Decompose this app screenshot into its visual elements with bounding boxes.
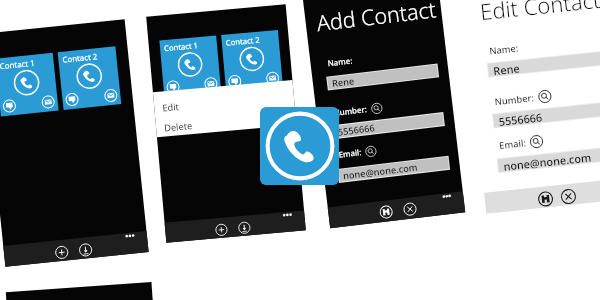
button[interactable]: More options [125,233,135,238]
button[interactable]: none@none.com [338,157,449,182]
staticText: Contact 1 [164,40,199,53]
button[interactable]: More options [282,212,292,217]
button[interactable]: 5556666 [333,113,444,138]
button[interactable]: Delete [164,119,194,134]
button[interactable]: Rene [488,50,600,77]
button[interactable]: Contact 2 [221,30,283,92]
button[interactable]: Search contacts [365,145,377,157]
button[interactable]: 5556666 [493,101,600,127]
button[interactable]: Search contacts [529,134,544,149]
button[interactable]: Rene [327,64,438,89]
button[interactable]: Search contacts [371,102,383,114]
button[interactable]: Save [379,205,393,219]
staticText: Rene [493,60,521,76]
button[interactable]: Contacts app icon [260,107,339,185]
button[interactable]: Save [537,191,554,207]
button[interactable]: More options [442,194,451,199]
button[interactable]: Contact 1 [0,53,59,116]
button[interactable]: none@none.com [498,146,600,172]
staticText: Email: [499,136,527,152]
button[interactable]: Contact 1 [159,35,221,97]
staticText: Email: [338,147,362,161]
staticText: Contact 2 [62,51,98,66]
staticText: Number: [333,104,368,119]
button[interactable]: Import contacts [78,243,93,257]
staticText: 5556666 [337,121,375,138]
staticText: Add Contact [315,0,438,37]
staticText: 5556666 [498,109,543,127]
button[interactable]: Cancel [403,202,417,216]
button[interactable]: Add contact [215,223,228,236]
staticText: Contact 1 [0,58,35,72]
staticText: none@none.com [342,160,418,181]
button[interactable]: Edit [162,100,180,115]
button[interactable]: Add contact [55,245,69,260]
staticText: Contact 2 [225,35,261,48]
button[interactable]: Import contacts [238,221,251,234]
staticText: Name: [489,41,520,57]
button[interactable]: Cancel [560,188,577,205]
staticText: Name: [327,55,353,69]
button[interactable]: Search contacts [538,89,552,104]
staticText: Edit Contact [478,0,600,26]
staticText: Number: [494,91,535,108]
staticText: none@none.com [503,149,592,172]
button[interactable]: Contact 2 [58,46,121,110]
staticText: Rene [331,74,356,89]
